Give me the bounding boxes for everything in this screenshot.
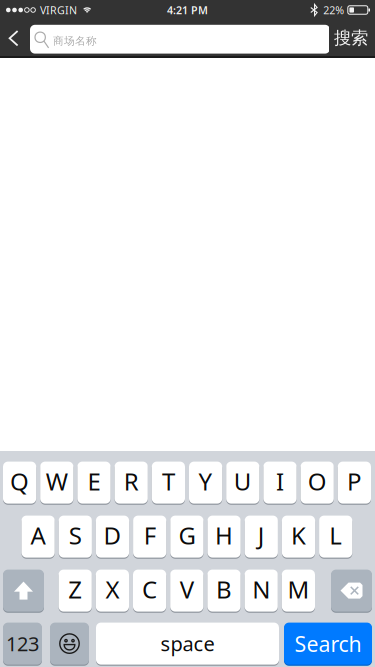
button[interactable]: A <box>21 515 55 558</box>
staticText: L <box>329 519 342 551</box>
button[interactable]: W <box>40 461 73 504</box>
button[interactable]: O <box>301 461 334 504</box>
staticText: X <box>105 573 119 605</box>
staticText: 搜索 <box>334 27 368 49</box>
button[interactable]: D <box>96 515 129 558</box>
button[interactable]: L <box>319 515 352 558</box>
button[interactable]: Y <box>189 461 222 504</box>
staticText: Z <box>68 573 82 605</box>
staticText: 商场名称 <box>53 34 97 47</box>
button[interactable]: S <box>59 515 92 558</box>
button[interactable]: B <box>207 569 241 612</box>
button[interactable]: Emoji keyboard <box>50 622 89 665</box>
staticText: Y <box>199 465 213 497</box>
button[interactable]: Q <box>3 461 36 504</box>
button[interactable]: Delete <box>331 569 372 612</box>
staticText: W <box>46 465 68 497</box>
button[interactable]: Back <box>0 20 30 56</box>
staticText: VIRGIN <box>40 3 77 17</box>
button[interactable]: C <box>133 569 166 612</box>
staticText: Search <box>294 629 361 658</box>
button[interactable]: V <box>170 569 203 612</box>
staticText: O <box>308 465 327 497</box>
button[interactable]: T <box>152 461 185 504</box>
button[interactable]: space <box>96 622 279 665</box>
staticText: N <box>252 573 270 605</box>
staticText: 22% <box>323 3 344 17</box>
button[interactable]: 搜索 <box>329 20 373 56</box>
staticText: A <box>31 519 46 551</box>
staticText: E <box>87 465 100 497</box>
button[interactable]: J <box>245 515 278 558</box>
button[interactable]: G <box>170 515 203 558</box>
staticText: C <box>142 573 157 605</box>
button[interactable]: 123 <box>3 622 42 665</box>
staticText: U <box>234 465 252 497</box>
button[interactable]: X <box>96 569 129 612</box>
button[interactable]: I <box>263 461 297 504</box>
staticText: space <box>160 630 214 657</box>
button[interactable]: Shift <box>3 569 44 612</box>
staticText: 4:21 PM <box>167 3 208 17</box>
staticText: P <box>347 465 362 497</box>
button[interactable]: F <box>133 515 166 558</box>
staticText: F <box>144 519 156 551</box>
staticText: B <box>216 573 232 605</box>
staticText: K <box>291 519 306 551</box>
staticText: 123 <box>6 630 39 657</box>
staticText: V <box>180 573 194 605</box>
staticText: S <box>69 519 82 551</box>
staticText: D <box>103 519 121 551</box>
button[interactable]: E <box>77 461 111 504</box>
staticText: R <box>124 465 139 497</box>
button[interactable]: N <box>245 569 278 612</box>
button[interactable]: Search <box>284 622 372 665</box>
button[interactable]: K <box>282 515 315 558</box>
staticText: T <box>162 465 175 497</box>
button[interactable]: M <box>282 569 315 612</box>
staticText: Q <box>10 465 29 497</box>
staticText: H <box>215 519 233 551</box>
staticText: J <box>258 519 265 551</box>
button[interactable]: U <box>226 461 259 504</box>
button[interactable]: P <box>338 461 371 504</box>
button[interactable]: H <box>207 515 241 558</box>
button[interactable]: Z <box>59 569 92 612</box>
staticText: I <box>276 465 284 497</box>
staticText: G <box>178 519 195 551</box>
staticText: M <box>287 573 309 605</box>
button[interactable]: R <box>115 461 148 504</box>
